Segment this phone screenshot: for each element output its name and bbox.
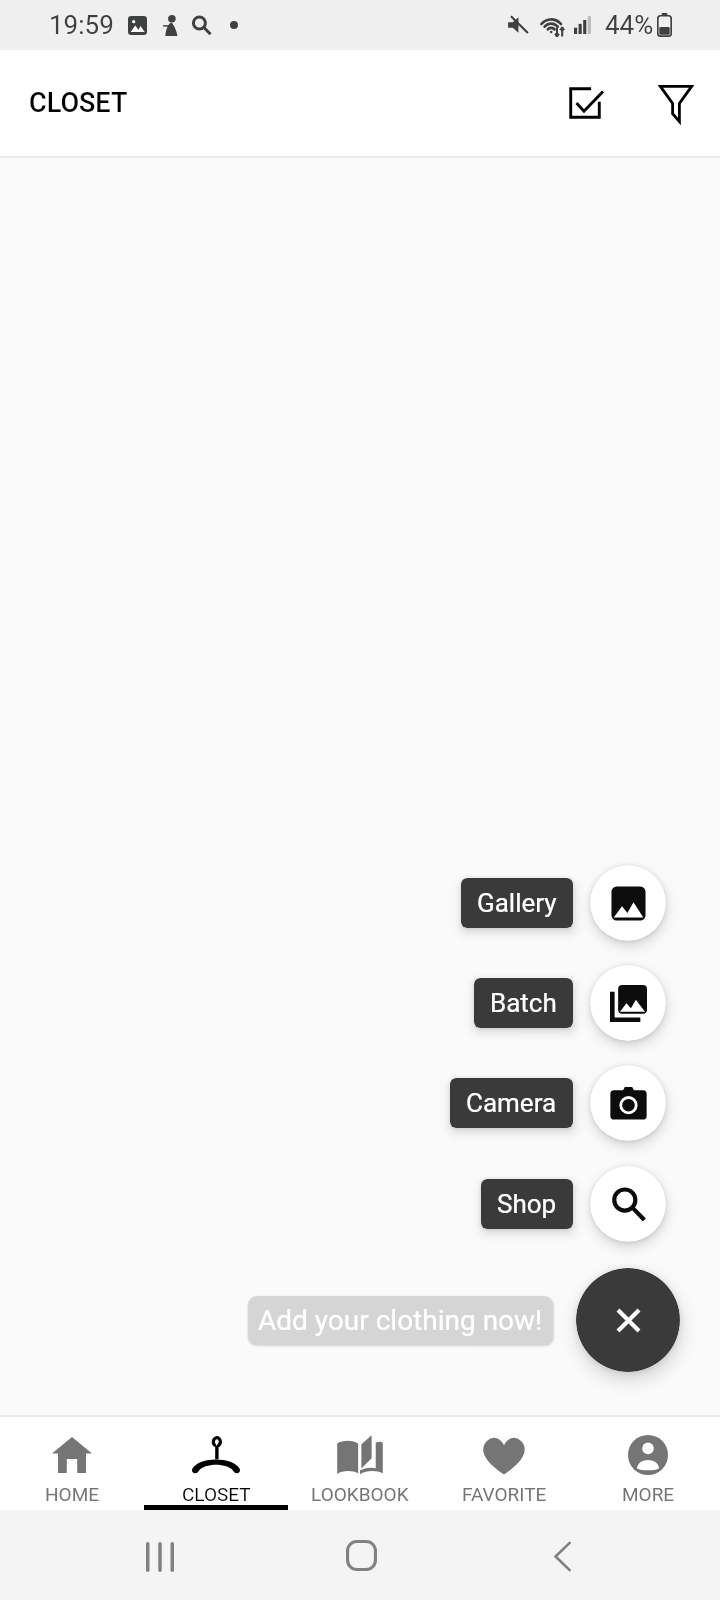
button[interactable]: Add your clothing now!: [248, 1296, 553, 1345]
staticText: 19:59: [49, 10, 114, 40]
button[interactable]: Select items: [553, 71, 617, 135]
button[interactable]: Batch: [590, 965, 666, 1041]
staticText: Camera: [466, 1088, 557, 1118]
staticText: LOOKBOOK: [311, 1483, 409, 1505]
staticText: Batch: [490, 988, 557, 1018]
staticText: HOME: [45, 1483, 100, 1505]
staticText: Shop: [497, 1189, 557, 1219]
staticText: 44%: [605, 10, 654, 40]
button[interactable]: Camera: [450, 1078, 573, 1128]
button[interactable]: CLOSET: [144, 1417, 288, 1510]
button[interactable]: Gallery: [590, 865, 666, 941]
button[interactable]: Back: [550, 1541, 574, 1572]
button[interactable]: Filter: [644, 71, 708, 135]
button[interactable]: Close add menu: [576, 1268, 680, 1372]
staticText: Gallery: [477, 888, 557, 918]
button[interactable]: Shop: [590, 1166, 666, 1242]
button[interactable]: Recents: [146, 1542, 174, 1572]
staticText: FAVORITE: [462, 1483, 547, 1505]
button[interactable]: HOME: [0, 1417, 144, 1510]
button[interactable]: FAVORITE: [432, 1417, 576, 1510]
button[interactable]: Batch: [474, 978, 573, 1028]
staticText: CLOSET: [29, 87, 128, 119]
staticText: CLOSET: [182, 1483, 251, 1505]
button[interactable]: Camera: [590, 1065, 666, 1141]
button[interactable]: Home: [346, 1540, 377, 1571]
button[interactable]: MORE: [576, 1417, 720, 1510]
button[interactable]: Shop: [481, 1179, 573, 1229]
button[interactable]: Gallery: [461, 878, 573, 928]
staticText: MORE: [622, 1483, 675, 1505]
button[interactable]: LOOKBOOK: [288, 1417, 432, 1510]
staticText: Add your clothing now!: [258, 1304, 543, 1337]
